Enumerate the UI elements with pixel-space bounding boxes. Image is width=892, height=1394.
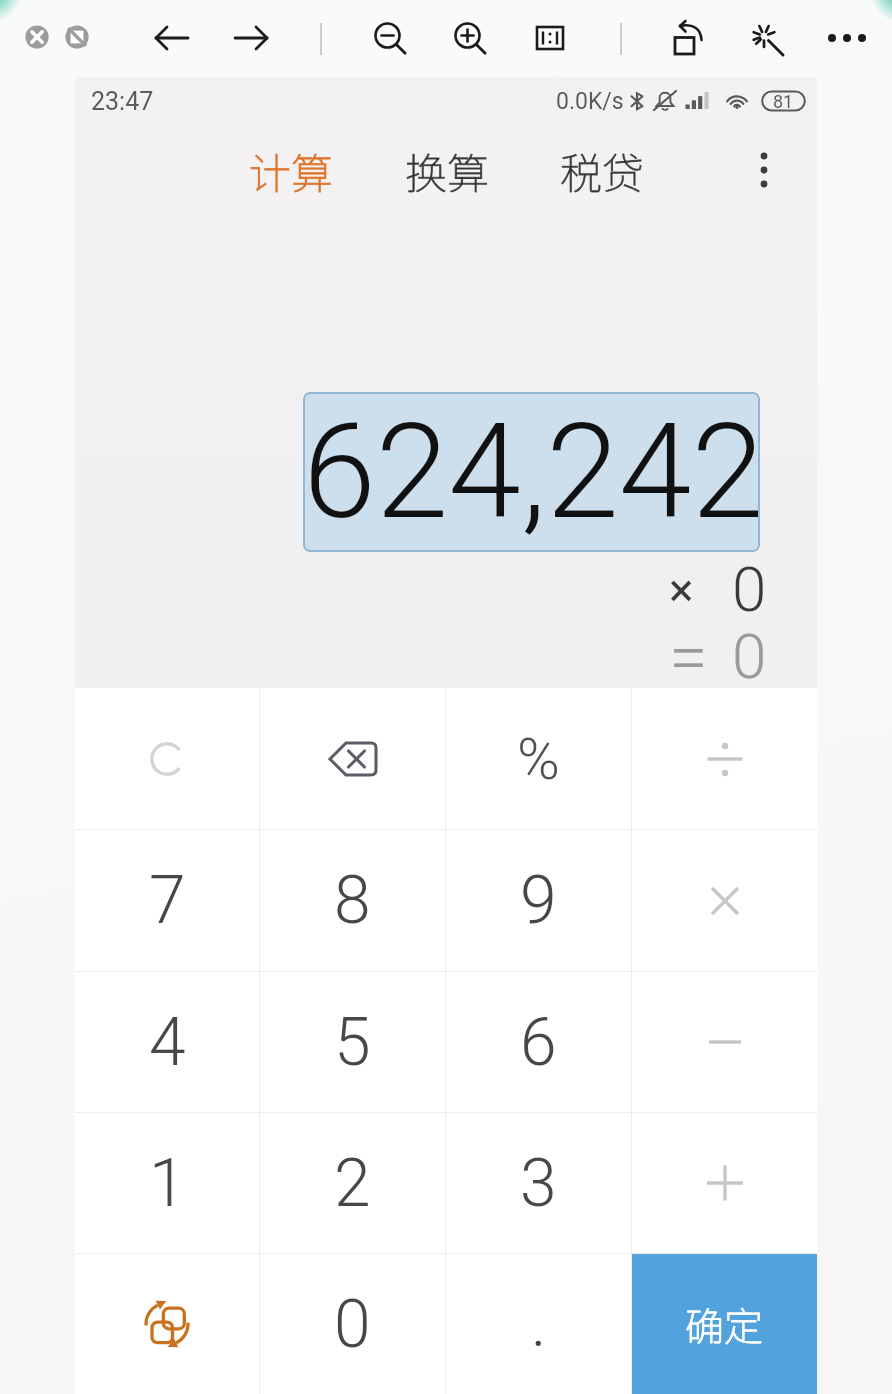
button[interactable]: 确定 — [632, 1254, 817, 1394]
other: Minus — [695, 1012, 755, 1072]
staticText: 税贷 — [560, 140, 645, 200]
staticText: 81 — [773, 91, 794, 112]
staticText: 税贷 — [560, 140, 645, 200]
button[interactable]: Back — [151, 17, 193, 59]
staticText: × — [669, 563, 694, 617]
button[interactable]: 换算 — [395, 140, 499, 200]
other: Plus — [695, 1153, 755, 1213]
button[interactable]: 6 — [446, 972, 631, 1112]
button[interactable]: 3 — [446, 1113, 631, 1253]
button[interactable]: Forward — [230, 17, 272, 59]
staticText: 换算 — [405, 140, 490, 200]
button[interactable]: Unit converter — [75, 1254, 259, 1394]
staticText: 计算 — [249, 140, 334, 200]
staticText: 7 — [149, 862, 186, 939]
staticText: 换算 — [405, 140, 490, 200]
staticText: 1 — [149, 1145, 186, 1222]
staticText: 确定 — [685, 1296, 764, 1352]
button[interactable]: Rotate — [666, 17, 708, 59]
button[interactable]: 1 — [75, 1113, 259, 1253]
other: Unit converter — [131, 1288, 203, 1360]
button[interactable]: 9 — [446, 830, 631, 971]
button[interactable]: Block media — [61, 21, 93, 53]
button[interactable]: Minus — [632, 972, 817, 1112]
button[interactable]: Zoom in — [449, 17, 491, 59]
button[interactable]: 2 — [260, 1113, 445, 1253]
button[interactable]: Backspace — [260, 688, 445, 829]
staticText: 3 — [520, 1145, 557, 1222]
button[interactable]: Effects — [748, 17, 790, 59]
button[interactable]: Divide — [632, 688, 817, 829]
staticText: 确定 — [685, 1296, 764, 1352]
button[interactable]: Actual size — [529, 17, 571, 59]
button[interactable]: 税贷 — [550, 140, 654, 200]
button[interactable]: 7 — [75, 830, 259, 971]
button[interactable]: Close — [21, 21, 53, 53]
staticText: 0.0K/s — [556, 88, 624, 115]
button[interactable]: % — [446, 688, 631, 829]
staticText: 23:47 — [91, 87, 154, 116]
button[interactable]: Clear — [75, 688, 259, 829]
button[interactable]: . — [446, 1254, 631, 1394]
staticText: 计算 — [249, 140, 334, 200]
button[interactable]: More — [826, 17, 868, 59]
other: Multiply — [695, 871, 755, 931]
staticText: 5 — [334, 1004, 371, 1081]
staticText: 0 — [334, 1286, 371, 1363]
button[interactable]: 5 — [260, 972, 445, 1112]
button[interactable]: Plus — [632, 1113, 817, 1253]
button[interactable]: 0 — [260, 1254, 445, 1394]
staticText: 0 — [732, 620, 767, 693]
staticText: 2 — [334, 1145, 371, 1222]
staticText: 8 — [334, 862, 371, 939]
staticText: 6 — [520, 1004, 557, 1081]
staticText: = — [669, 616, 708, 698]
staticText: 624,242 — [303, 395, 760, 549]
button[interactable]: Zoom out — [369, 17, 411, 59]
button[interactable]: Multiply — [632, 830, 817, 971]
button[interactable]: More options — [740, 146, 788, 194]
other: Clear — [135, 727, 199, 791]
button[interactable]: 4 — [75, 972, 259, 1112]
staticText: 4 — [149, 1004, 186, 1081]
staticText: . — [531, 1287, 547, 1362]
button[interactable]: 624,242 — [303, 392, 760, 552]
button[interactable]: 计算 — [239, 140, 343, 200]
other: Backspace — [313, 719, 393, 799]
other: Divide — [695, 729, 755, 789]
staticText: 0 — [732, 553, 767, 626]
button[interactable]: 8 — [260, 830, 445, 971]
staticText: 9 — [520, 862, 557, 939]
staticText: % — [517, 725, 560, 793]
